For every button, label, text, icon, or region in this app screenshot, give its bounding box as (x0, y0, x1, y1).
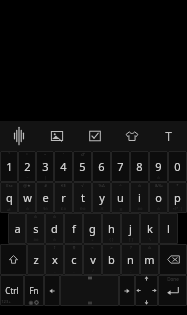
button[interactable]: ♀ (64, 244, 83, 275)
staticText: # (44, 183, 47, 189)
staticText: ° (26, 152, 28, 158)
staticText: ŏ (26, 206, 29, 212)
button[interactable]: ŏ (130, 182, 149, 213)
button[interactable]: 6 (92, 151, 111, 182)
staticText: [ ] (129, 237, 133, 243)
button[interactable]: ° (18, 151, 36, 182)
staticText: o (155, 190, 162, 205)
button[interactable]: > (102, 244, 121, 275)
button[interactable]: 8 (130, 151, 149, 182)
button[interactable]: ^ (111, 182, 130, 213)
button[interactable]: + (83, 213, 102, 244)
button[interactable]: 7 (111, 151, 130, 182)
button[interactable]: Text (150, 121, 187, 151)
button[interactable]: €$ (54, 182, 73, 213)
button[interactable]: # (36, 182, 54, 213)
button[interactable]: \ (140, 213, 159, 244)
button[interactable]: @★ (18, 182, 36, 213)
staticText: ŏ (148, 245, 151, 251)
button[interactable]: Function (24, 275, 44, 306)
staticText: < (91, 245, 94, 251)
button[interactable]: ŏ (45, 213, 64, 244)
staticText: 123+ (1, 299, 11, 305)
staticText: h (108, 221, 115, 236)
button[interactable]: &‰ (149, 182, 168, 213)
button[interactable]: a (8, 213, 26, 244)
staticText: l (167, 221, 170, 236)
staticText: { } (109, 237, 114, 243)
button[interactable]: Cursor left (44, 275, 60, 306)
staticText: ♂ (81, 152, 85, 157)
button[interactable]: l (159, 213, 178, 244)
button[interactable]: ŏ (149, 151, 168, 182)
button[interactable]: * (168, 182, 187, 213)
staticText: ^ (119, 183, 122, 189)
staticText: ŏ (53, 237, 56, 243)
button[interactable]: ? (121, 244, 140, 275)
staticText: ≡ (119, 207, 123, 212)
button[interactable]: √ (73, 182, 92, 213)
button[interactable]: Esc (0, 182, 18, 213)
staticText: > (110, 245, 113, 251)
button[interactable]: ŏ (26, 213, 45, 244)
staticText: \ (149, 237, 151, 243)
staticText: ŏ (138, 183, 141, 189)
staticText: 2 (24, 159, 31, 174)
staticText: ŏŏ (137, 206, 143, 212)
button[interactable]: Control (0, 275, 24, 306)
staticText: 9 (155, 159, 162, 174)
button[interactable]: { } (102, 213, 121, 244)
button[interactable]: Arrow keys (135, 275, 158, 306)
staticText: §ŏ (43, 206, 48, 212)
button[interactable]: Shift (0, 244, 27, 275)
button[interactable]: Voice input (0, 121, 38, 151)
staticText: T (165, 128, 172, 144)
staticText: ' (63, 152, 64, 158)
staticText: g (89, 221, 96, 236)
staticText: † (53, 245, 56, 251)
button[interactable]: [ ] (121, 213, 140, 244)
staticText: 5 (79, 159, 86, 174)
button[interactable]: ' (54, 151, 73, 182)
staticText: q (6, 190, 13, 205)
staticText: | (44, 175, 47, 181)
button[interactable]: Cursor right (119, 275, 135, 306)
staticText: -\( (99, 206, 104, 212)
staticText: w (23, 190, 32, 205)
staticText: 6 (98, 159, 105, 174)
button[interactable]: Clipboard (76, 121, 113, 151)
button[interactable]: _ (64, 213, 83, 244)
button[interactable]: 0 (168, 151, 187, 182)
button[interactable]: † (45, 244, 64, 275)
button[interactable]: %Δ (92, 182, 111, 213)
button[interactable]: Themes (113, 121, 150, 151)
button[interactable]: ¹ (0, 151, 18, 182)
staticText: s (33, 221, 39, 236)
staticText: €$ (61, 183, 66, 189)
staticText: Fn (29, 285, 39, 296)
button[interactable]: Done (158, 275, 187, 306)
button[interactable]: < (83, 244, 102, 275)
button[interactable]: ŏ (140, 244, 159, 275)
staticText: c (71, 252, 77, 267)
staticText: e (42, 190, 49, 205)
staticText: ♀ (72, 245, 76, 250)
staticText: ¹ (8, 152, 10, 158)
staticText: 8 (136, 159, 143, 174)
button[interactable]: • (36, 151, 54, 182)
staticText: ? (130, 245, 132, 251)
button[interactable]: Insert image (38, 121, 76, 151)
staticText: • (44, 152, 46, 158)
staticText: £ŏ (61, 206, 66, 212)
staticText: 1 (6, 159, 13, 174)
staticText: j (129, 221, 132, 236)
button[interactable]: Space (60, 275, 119, 306)
button[interactable]: ♂ (73, 151, 92, 182)
staticText: y (99, 190, 105, 205)
button[interactable]: z (27, 244, 45, 275)
button[interactable]: Backspace (159, 244, 187, 275)
